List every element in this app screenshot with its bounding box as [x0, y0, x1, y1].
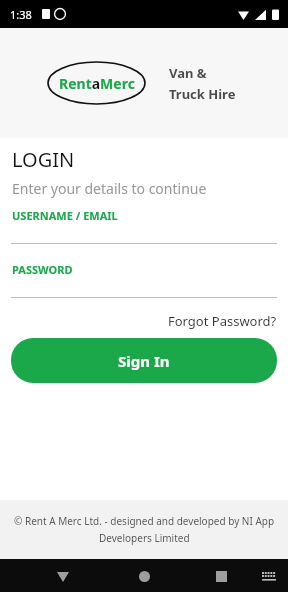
staticText: 1:38 [10, 7, 32, 22]
staticText: LOGIN [12, 146, 75, 173]
staticText: PASSWORD [12, 262, 73, 277]
button[interactable]: USERNAME / EMAIL [0, 202, 288, 244]
staticText: © Rent A Merc Ltd. - designed and develo… [14, 514, 275, 528]
staticText: Truck Hire [169, 85, 236, 103]
staticText: RentaMerc [59, 74, 135, 93]
button[interactable]: Keyboard [256, 563, 282, 589]
button[interactable]: Home [129, 561, 159, 591]
button[interactable]: Sign In [11, 338, 277, 383]
button[interactable]: PASSWORD [0, 256, 288, 298]
button[interactable]: Forgot Password? [168, 310, 288, 332]
staticText: USERNAME / EMAIL [12, 208, 118, 223]
staticText: Forgot Password? [168, 312, 277, 330]
button[interactable]: Recent apps [206, 561, 236, 591]
staticText: Enter your details to continue [12, 179, 207, 198]
staticText: Sign In [118, 351, 170, 371]
staticText: Van & [169, 64, 207, 82]
button[interactable]: Back [48, 561, 78, 591]
staticText: Developers Limited [99, 531, 190, 545]
